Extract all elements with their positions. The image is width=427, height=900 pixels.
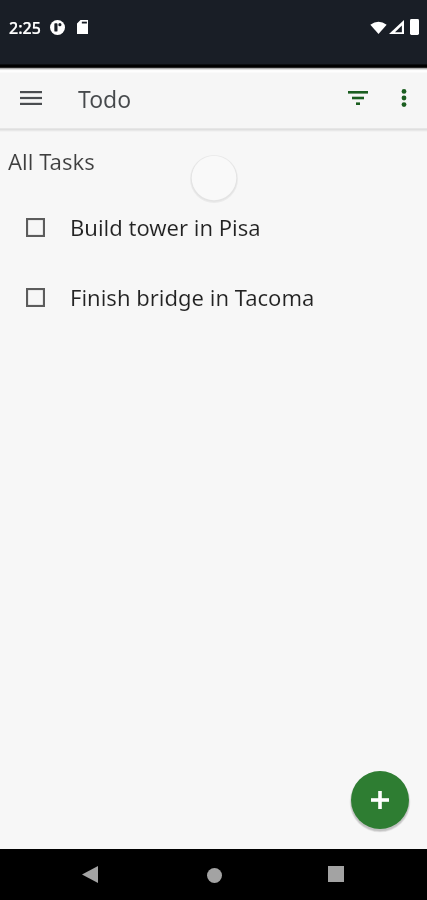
button[interactable]: Build tower in Pisa [0, 203, 427, 251]
staticText: 2:25 [9, 17, 41, 39]
button[interactable]: Back [66, 850, 114, 898]
staticText: Build tower in Pisa [70, 212, 261, 242]
staticText: Todo [78, 83, 132, 114]
button[interactable]: More options [380, 74, 427, 122]
staticText: Finish bridge in Tacoma [70, 282, 315, 312]
button[interactable]: Finish bridge in Tacoma [0, 273, 427, 321]
staticText: All Tasks [8, 146, 95, 176]
button[interactable]: Filter tasks [334, 74, 382, 122]
button[interactable]: Add task [351, 771, 409, 829]
button[interactable]: Open navigation menu [7, 74, 55, 122]
button[interactable]: Recent apps [312, 850, 360, 898]
button[interactable]: Home [190, 851, 238, 899]
